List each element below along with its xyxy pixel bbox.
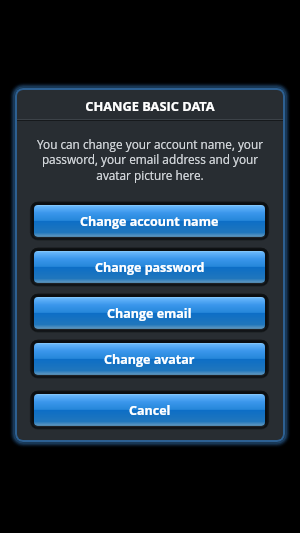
staticText: You can change your account name, your p…	[31, 136, 269, 184]
button[interactable]: Cancel	[34, 394, 265, 426]
button[interactable]: Change avatar	[34, 343, 265, 375]
button[interactable]: Change password	[34, 251, 265, 283]
staticText: Change email	[107, 305, 192, 322]
staticText: Cancel	[129, 402, 171, 419]
staticText: CHANGE BASIC DATA	[17, 97, 283, 114]
button[interactable]: Change email	[34, 297, 265, 329]
staticText: Change avatar	[104, 351, 195, 368]
staticText: Change account name	[80, 213, 219, 230]
staticText: Change password	[95, 259, 205, 276]
button[interactable]: Change account name	[34, 205, 265, 237]
